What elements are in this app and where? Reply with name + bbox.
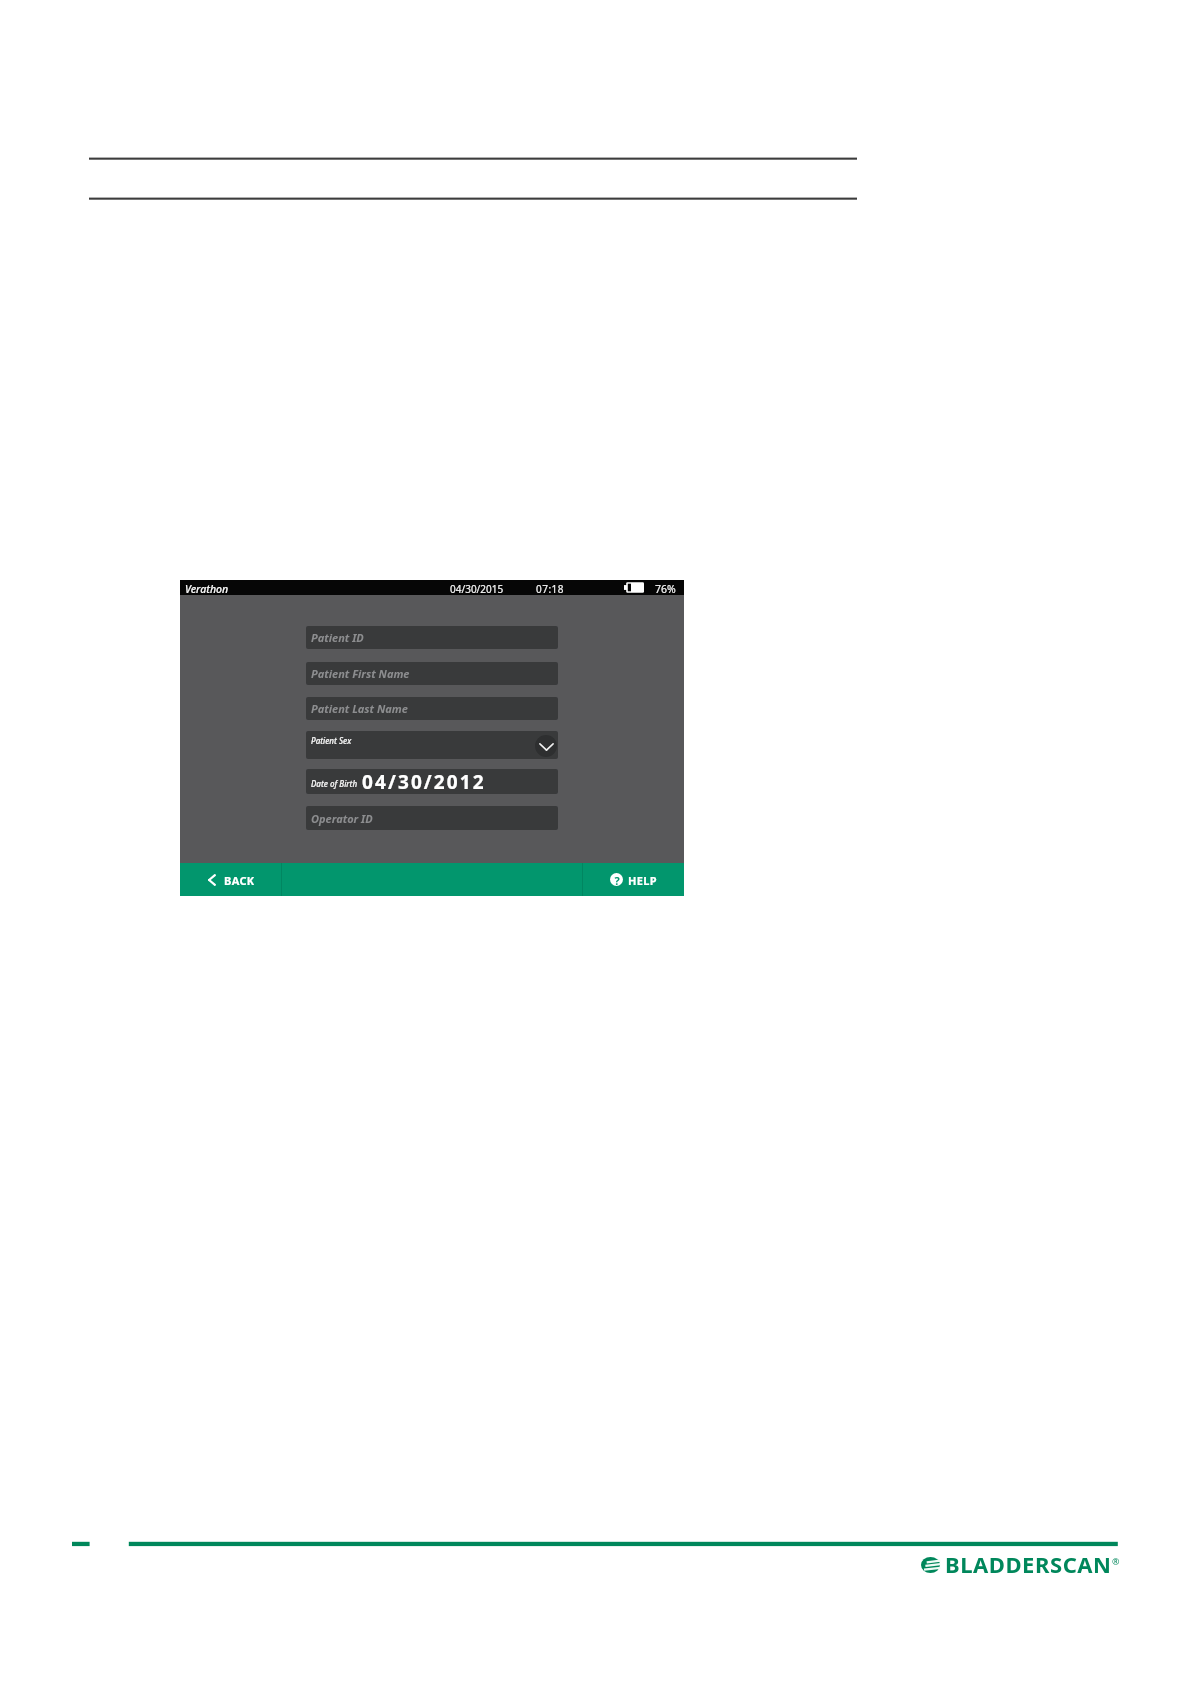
staticText: Date of Birth xyxy=(311,778,358,789)
staticText: HELP xyxy=(628,873,657,888)
staticText: Verathon xyxy=(185,582,229,596)
staticText: Operator ID xyxy=(311,811,373,826)
button[interactable]: Patient ID xyxy=(306,626,558,649)
button[interactable]: Date of Birth xyxy=(306,769,558,794)
staticText: 76% xyxy=(655,582,676,596)
staticText: Patient Sex xyxy=(311,735,352,746)
staticText: ® xyxy=(1112,1555,1120,1567)
staticText: Patient ID xyxy=(311,630,364,645)
button[interactable]: ? xyxy=(583,863,684,896)
staticText: BLADDERSCAN xyxy=(945,1549,1112,1579)
staticText: ? xyxy=(614,873,620,886)
staticText: BACK xyxy=(224,873,255,888)
staticText: Patient First Name xyxy=(311,666,410,681)
button[interactable]: Patient Sex xyxy=(306,731,558,759)
staticText: Patient Last Name xyxy=(311,701,408,716)
button[interactable]: Patient First Name xyxy=(306,662,558,685)
staticText: 04/30/2012 xyxy=(362,769,486,794)
button[interactable]: Patient Last Name xyxy=(306,697,558,720)
staticText: 04/30/2015 xyxy=(450,582,504,596)
button[interactable]: BACK xyxy=(180,863,281,896)
button[interactable]: Choose patient sex xyxy=(535,735,557,757)
button[interactable]: Operator ID xyxy=(306,806,558,830)
staticText: 07:18 xyxy=(536,582,565,596)
